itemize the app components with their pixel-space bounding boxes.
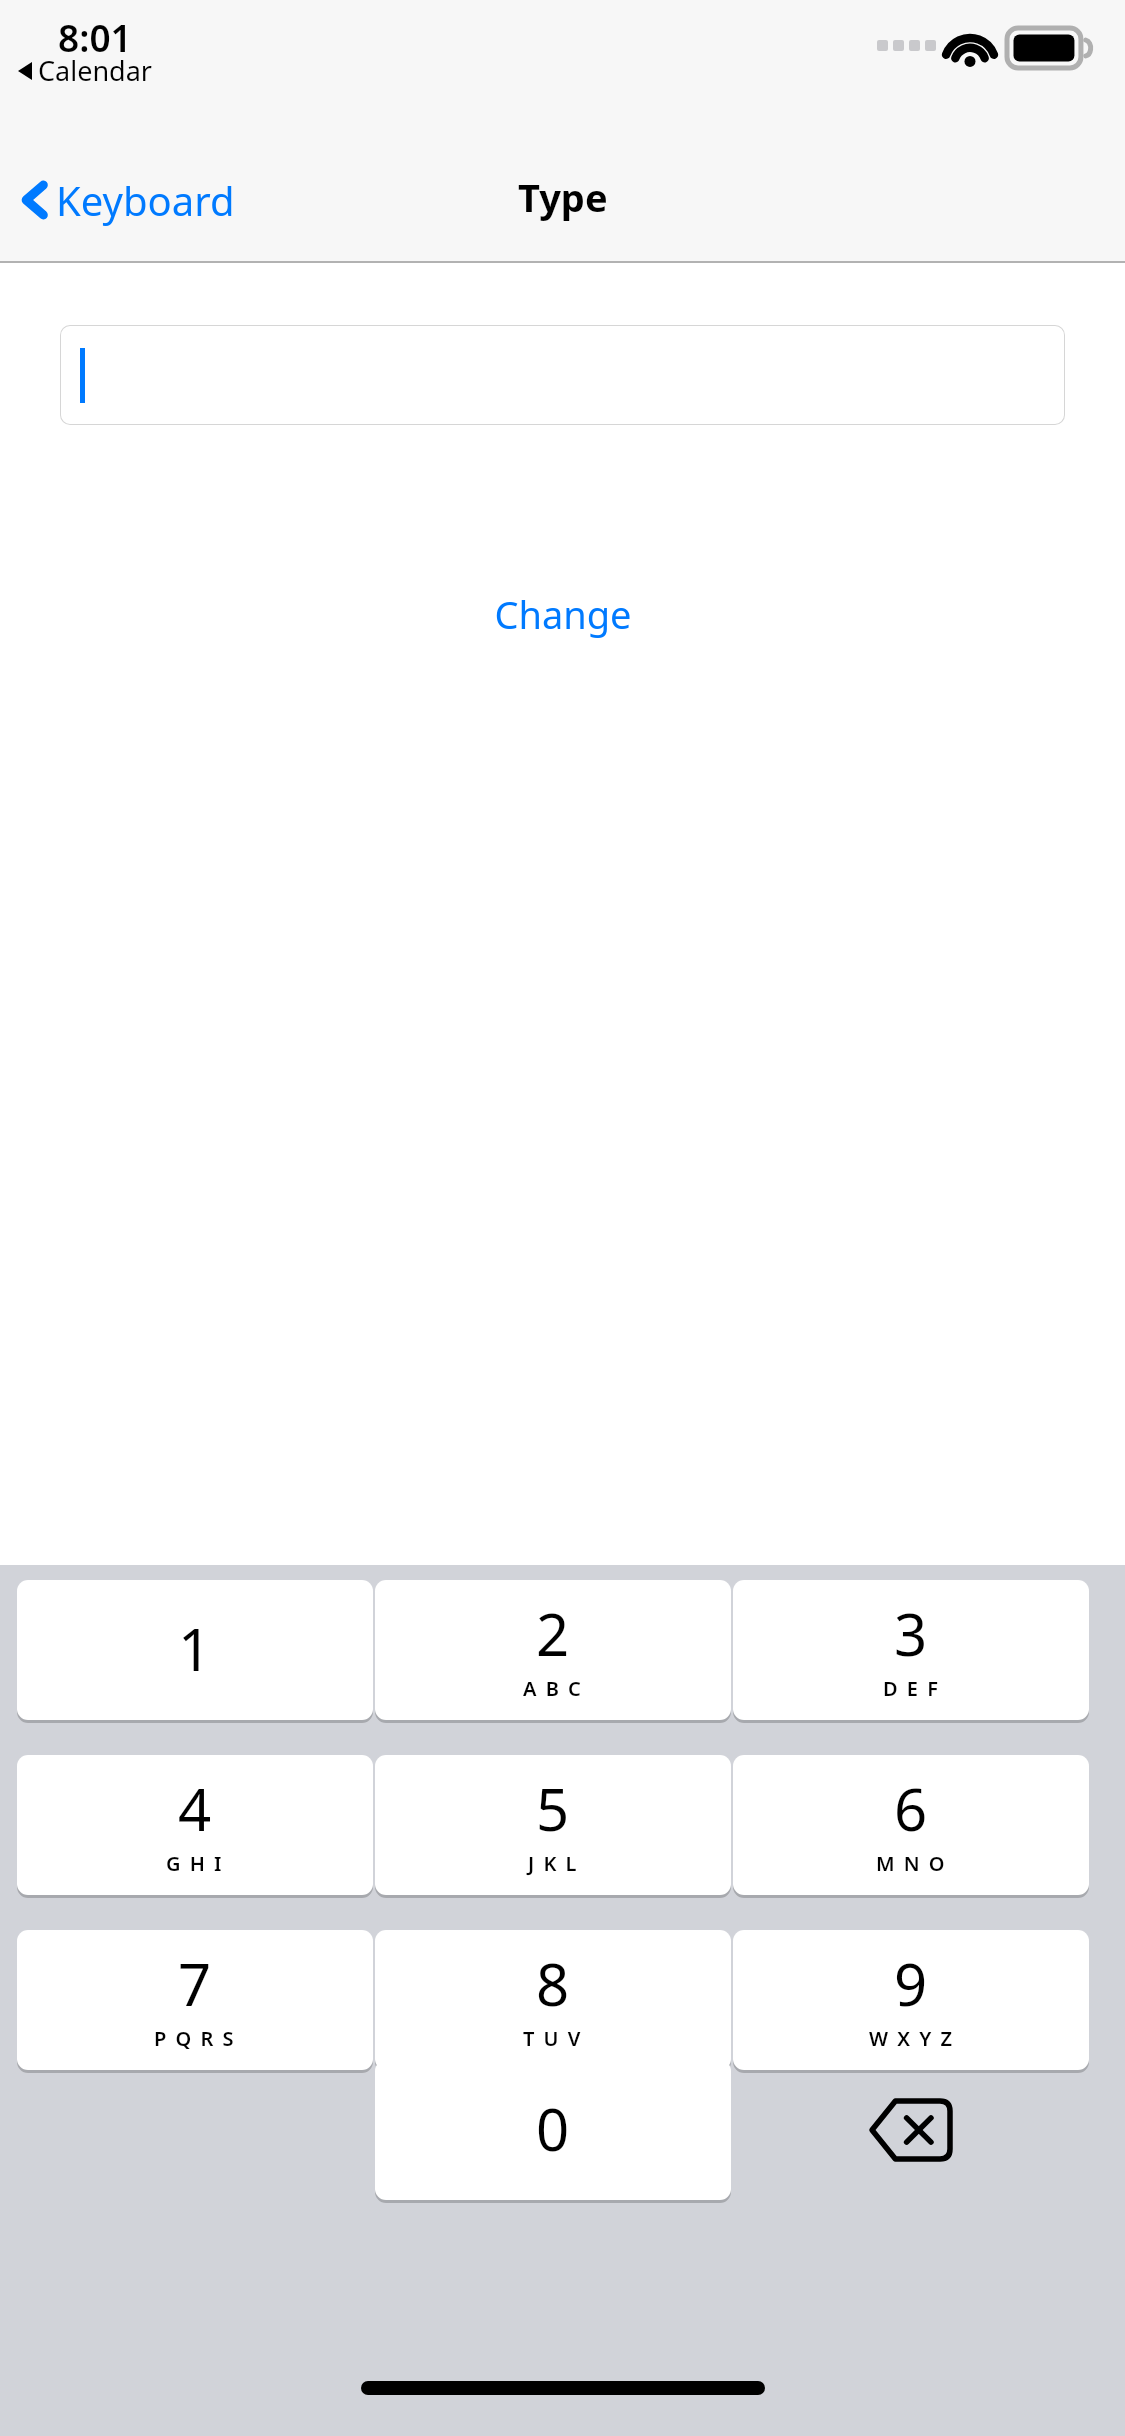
staticText: 0 [536, 2089, 570, 2168]
staticText: P Q R S [154, 2025, 236, 2052]
staticText: 1 [178, 1609, 212, 1688]
staticText: W X Y Z [869, 2025, 954, 2052]
staticText: 8:01 [58, 12, 132, 62]
staticText: A B C [523, 1675, 583, 1702]
button[interactable] [60, 325, 1065, 425]
button[interactable]: 2 [375, 1580, 731, 1720]
button[interactable]: 8 [375, 1930, 731, 2070]
button[interactable]: 7 [17, 1930, 373, 2070]
staticText: 9 [894, 1944, 928, 2023]
staticText: 3 [894, 1594, 928, 1673]
button[interactable]: 1 [17, 1580, 373, 1720]
staticText: 7 [178, 1944, 212, 2023]
staticText: D E F [883, 1675, 940, 1702]
staticText: 8 [536, 1944, 570, 2023]
button[interactable]: Keyboard [16, 165, 241, 235]
staticText: M N O [876, 1850, 947, 1877]
button[interactable]: 5 [375, 1755, 731, 1895]
button[interactable]: 4 [17, 1755, 373, 1895]
staticText: Type [518, 171, 608, 223]
button[interactable]: 0 [375, 2060, 731, 2200]
staticText: G H I [166, 1850, 224, 1877]
button[interactable]: Change [472, 578, 654, 650]
button[interactable]: 6 [733, 1755, 1089, 1895]
staticText: 2 [536, 1594, 570, 1673]
staticText: 5 [536, 1769, 570, 1848]
button[interactable]: Calendar [18, 52, 152, 89]
staticText: Change [494, 588, 632, 640]
staticText: J K L [528, 1850, 579, 1877]
button[interactable]: 9 [733, 1930, 1089, 2070]
staticText: Calendar [38, 52, 152, 89]
button[interactable]: 3 [733, 1580, 1089, 1720]
staticText: 4 [178, 1769, 212, 1848]
staticText: 6 [894, 1769, 928, 1848]
staticText: Keyboard [56, 173, 235, 227]
staticText: T U V [523, 2025, 583, 2052]
button[interactable]: Backspace [733, 2060, 1089, 2200]
